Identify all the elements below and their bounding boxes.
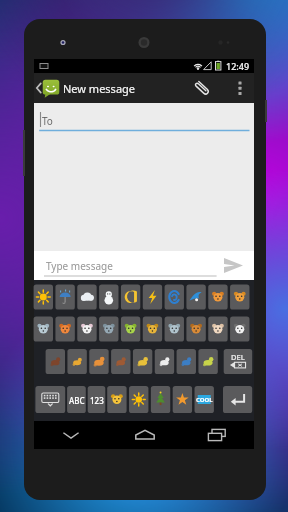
staticText: ABC xyxy=(69,395,85,406)
button[interactable]: Attach xyxy=(176,73,229,103)
button[interactable]: Hide keyboard xyxy=(34,421,108,449)
button[interactable]: Type message xyxy=(34,251,254,280)
staticText: Type message xyxy=(46,259,113,273)
staticText: COOL xyxy=(196,396,213,404)
staticText: 123 xyxy=(90,395,104,406)
button[interactable]: More options xyxy=(229,73,250,103)
staticText: To xyxy=(42,114,53,128)
staticText: DEL xyxy=(231,352,245,362)
button[interactable]: Navigate up xyxy=(34,73,60,103)
staticText: New message xyxy=(63,81,136,96)
button[interactable]: Recent apps xyxy=(181,421,254,449)
staticText: 12:49 xyxy=(226,60,250,72)
button[interactable]: Home xyxy=(108,421,181,449)
